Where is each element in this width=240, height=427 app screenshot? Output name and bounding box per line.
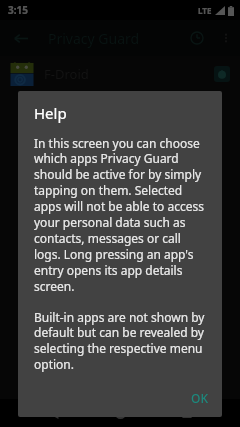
button[interactable]: F-Droid bbox=[0, 56, 240, 92]
button[interactable]: Home bbox=[106, 399, 134, 427]
button[interactable]: Recent apps bbox=[173, 399, 201, 427]
button[interactable]: Back bbox=[39, 399, 67, 427]
staticText: OK bbox=[191, 390, 208, 406]
staticText: Privacy Guard bbox=[48, 29, 140, 48]
staticText: Built-in apps are not shown by default b… bbox=[34, 309, 208, 373]
staticText: LTE bbox=[198, 5, 212, 16]
staticText: In this screen you can choose which apps… bbox=[34, 135, 208, 295]
staticText: Help bbox=[34, 103, 67, 123]
button[interactable]: Reset bbox=[182, 23, 212, 53]
staticText: F-Droid bbox=[44, 65, 89, 83]
button[interactable]: Privacy Guard state bbox=[214, 66, 230, 82]
button[interactable]: OK bbox=[177, 383, 222, 413]
staticText: 3:15 bbox=[8, 3, 28, 17]
